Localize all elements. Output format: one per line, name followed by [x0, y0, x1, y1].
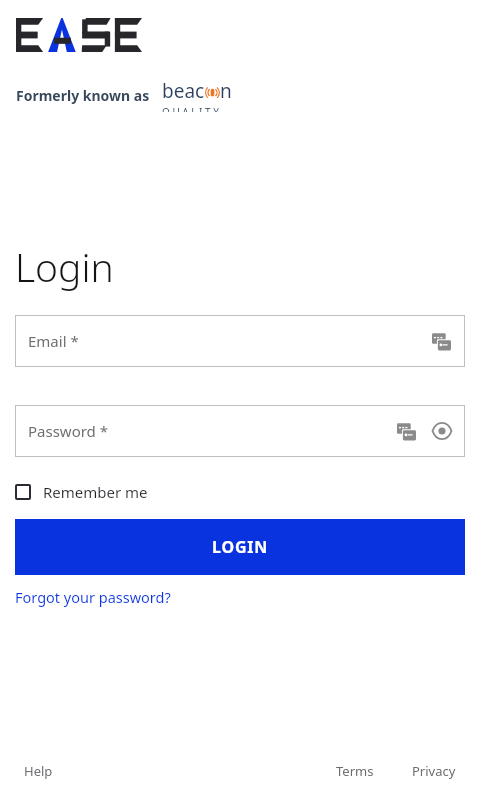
button[interactable]: LOGIN — [15, 519, 465, 575]
button[interactable]: Email * — [15, 315, 465, 367]
staticText: Remember me — [43, 482, 148, 502]
staticText: Formerly known as — [16, 86, 150, 105]
button[interactable]: Autofill email — [430, 330, 452, 352]
button[interactable]: Show password — [430, 419, 454, 443]
staticText: Login — [15, 240, 114, 293]
staticText: Help — [24, 762, 53, 780]
button[interactable]: Help — [24, 762, 53, 780]
staticText: QUALITY — [162, 105, 222, 112]
staticText: Terms — [336, 762, 374, 780]
button[interactable]: Privacy — [412, 762, 456, 780]
staticText: Forgot your password? — [15, 587, 171, 607]
button[interactable]: Password * — [15, 405, 465, 457]
staticText: beac — [162, 78, 205, 104]
button[interactable]: Remember me — [15, 479, 148, 505]
staticText: Password * — [28, 421, 109, 441]
staticText: Email * — [28, 331, 79, 351]
button[interactable]: Forgot your password? — [15, 587, 171, 607]
button[interactable]: Autofill password — [395, 420, 417, 442]
staticText: LOGIN — [212, 536, 269, 558]
button[interactable]: Terms — [336, 762, 374, 780]
staticText: Privacy — [412, 762, 456, 780]
staticText: n — [220, 78, 232, 104]
